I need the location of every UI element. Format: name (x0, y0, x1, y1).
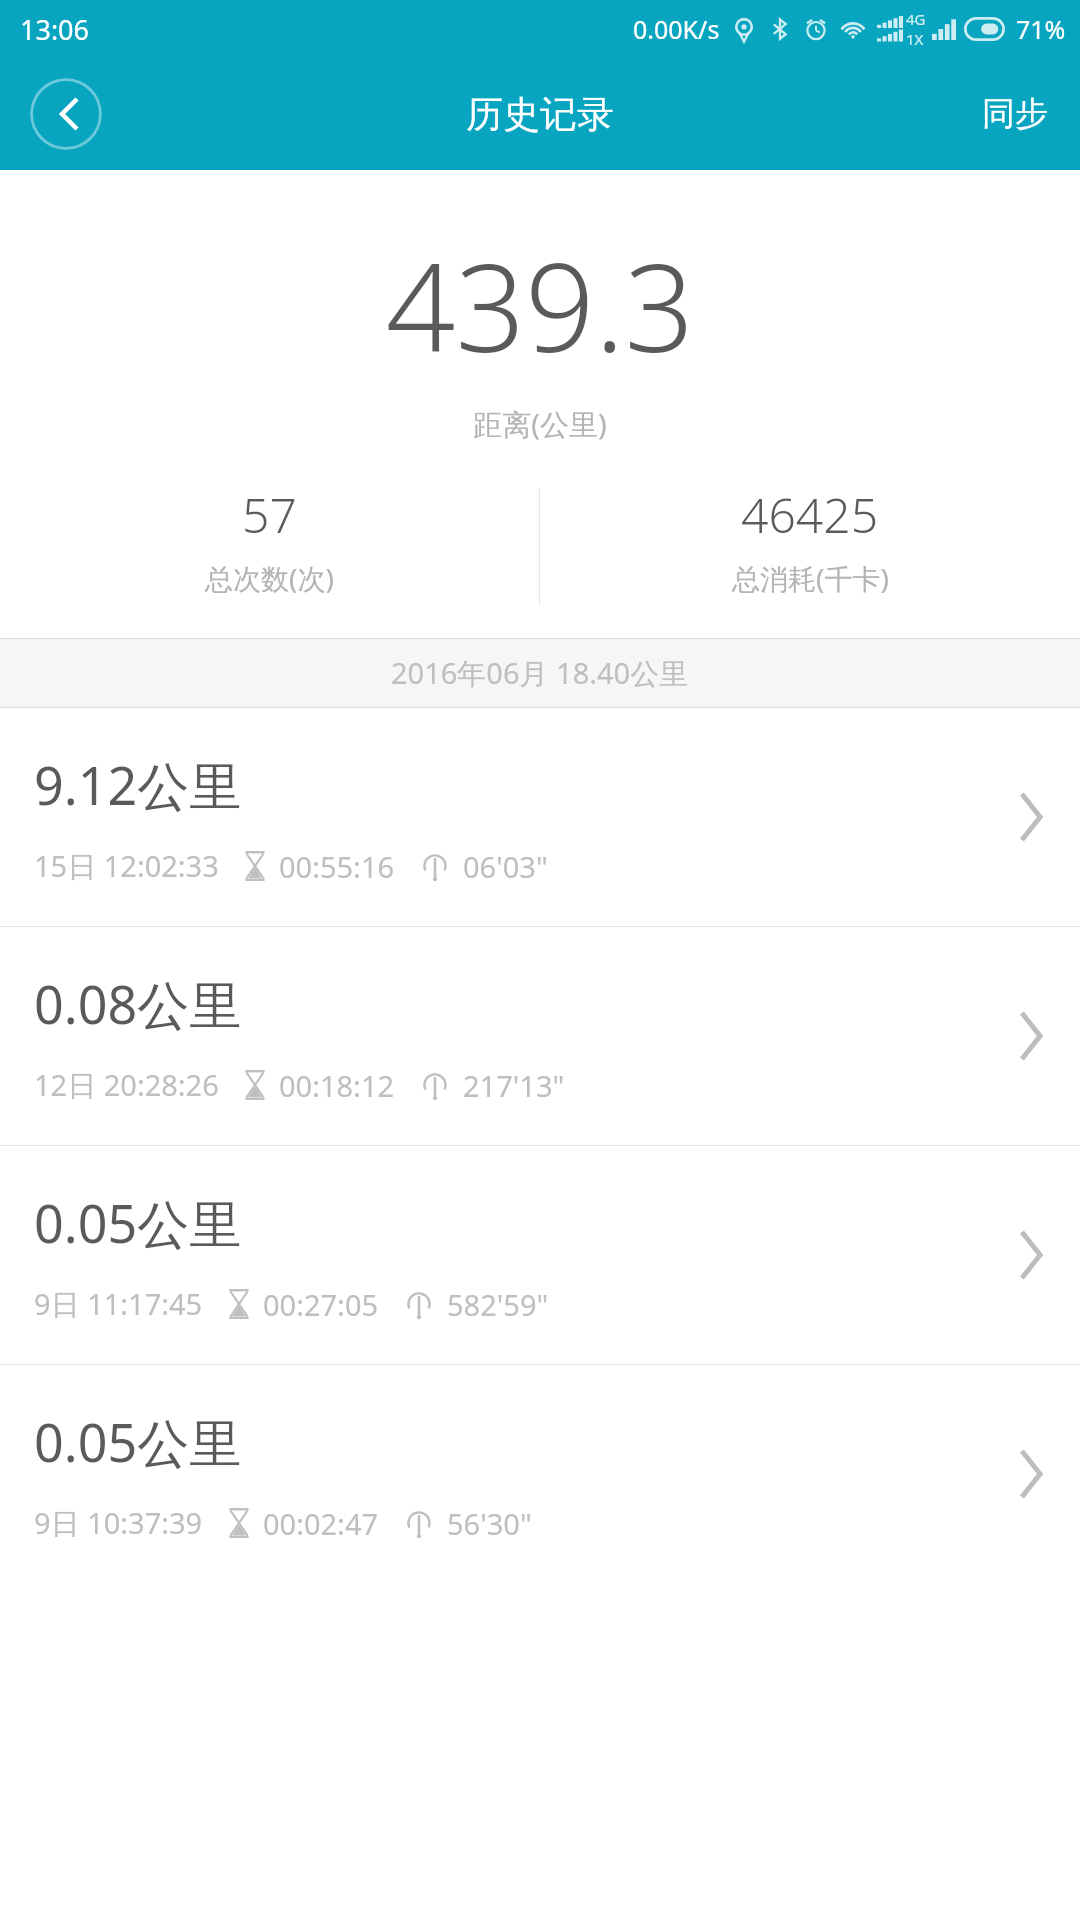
staticText: 9日 10:37:39 (34, 1503, 203, 1543)
staticText: 9.12公里 (34, 749, 242, 820)
staticText: 217'13" (463, 1066, 565, 1105)
staticText: 00:55:16 (279, 847, 395, 886)
staticText: 06'03" (463, 847, 548, 886)
staticText: 总消耗(千卡) (732, 559, 889, 597)
staticText: 56'30" (447, 1504, 532, 1543)
staticText: 582'59" (447, 1285, 549, 1324)
staticText: 9日 11:17:45 (34, 1284, 203, 1324)
staticText: 57 (242, 482, 297, 547)
button[interactable]: 0.05公里 (0, 1365, 1080, 1583)
button[interactable]: Back (30, 78, 102, 150)
staticText: 00:27:05 (263, 1285, 379, 1324)
staticText: 1X (906, 29, 924, 49)
staticText: 总次数(次) (205, 559, 334, 597)
staticText: 46425 (741, 482, 879, 547)
staticText: 距离(公里) (0, 404, 1080, 444)
staticText: 00:18:12 (279, 1066, 395, 1105)
staticText: 12日 20:28:26 (34, 1065, 219, 1105)
staticText: 历史记录 (466, 91, 614, 138)
staticText: 439.3 (0, 222, 1080, 388)
staticText: 13:06 (20, 11, 90, 48)
staticText: 0.00K/s (633, 12, 720, 46)
staticText: 0.05公里 (34, 1406, 242, 1477)
button[interactable]: 0.08公里 (0, 927, 1080, 1145)
staticText: 0.05公里 (34, 1187, 242, 1258)
button[interactable]: 0.05公里 (0, 1146, 1080, 1364)
staticText: 71% (1016, 12, 1066, 46)
button[interactable]: 9.12公里 (0, 708, 1080, 926)
staticText: 2016年06月 18.40公里 (391, 653, 689, 693)
staticText: 00:02:47 (263, 1504, 379, 1543)
staticText: 0.08公里 (34, 968, 242, 1039)
staticText: 4G (906, 9, 926, 29)
staticText: 15日 12:02:33 (34, 846, 219, 886)
staticText: 同步 (982, 93, 1048, 135)
button[interactable]: 同步 (960, 81, 1070, 147)
